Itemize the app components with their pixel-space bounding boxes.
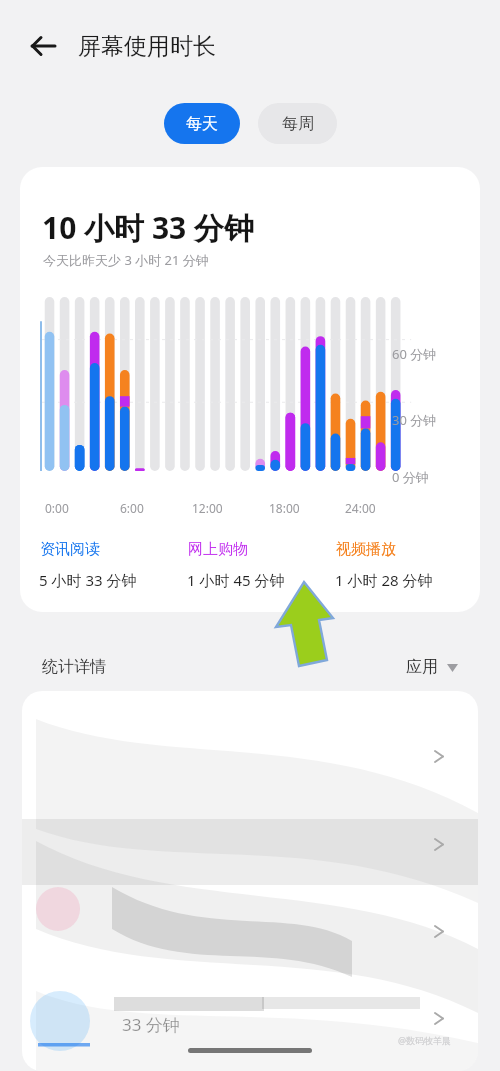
button[interactable]: App detail 2 [412, 819, 464, 869]
button[interactable]: 每天 [164, 103, 240, 144]
button[interactable]: Back [20, 23, 66, 69]
staticText: 24:00 [345, 500, 376, 516]
staticText: 1 小时 28 分钟 [335, 570, 433, 590]
button[interactable]: App detail 4 [412, 993, 464, 1043]
staticText: 应用 [406, 657, 438, 677]
staticText: 30 分钟 [392, 411, 437, 429]
staticText: 统计详情 [42, 657, 106, 677]
staticText: 今天比昨天少 3 小时 21 分钟 [43, 251, 209, 269]
button[interactable]: 10 小时 33 分钟 [20, 167, 480, 612]
staticText: 10 小时 33 分钟 [42, 207, 255, 248]
staticText: 网上购物 [188, 540, 248, 559]
button[interactable]: 每周 [258, 103, 337, 144]
staticText: 屏幕使用时长 [78, 32, 216, 61]
staticText: 1 小时 45 分钟 [187, 570, 285, 590]
staticText: 33 分钟 [122, 1013, 180, 1036]
button[interactable]: App detail 3 [412, 906, 464, 956]
button[interactable]: App detail 1 [412, 731, 464, 781]
staticText: 0 分钟 [392, 468, 429, 486]
staticText: 6:00 [120, 500, 144, 516]
staticText: 0:00 [45, 500, 69, 516]
staticText: 5 小时 33 分钟 [39, 570, 137, 590]
staticText: 12:00 [192, 500, 223, 516]
staticText: @数码牧羊晨 [398, 1034, 452, 1046]
staticText: 每天 [186, 114, 218, 134]
staticText: 18:00 [269, 500, 300, 516]
staticText: 60 分钟 [392, 345, 437, 363]
staticText: 资讯阅读 [40, 540, 100, 559]
button[interactable]: 应用 [406, 657, 458, 677]
staticText: 每周 [282, 114, 314, 134]
staticText: 视频播放 [336, 540, 396, 559]
